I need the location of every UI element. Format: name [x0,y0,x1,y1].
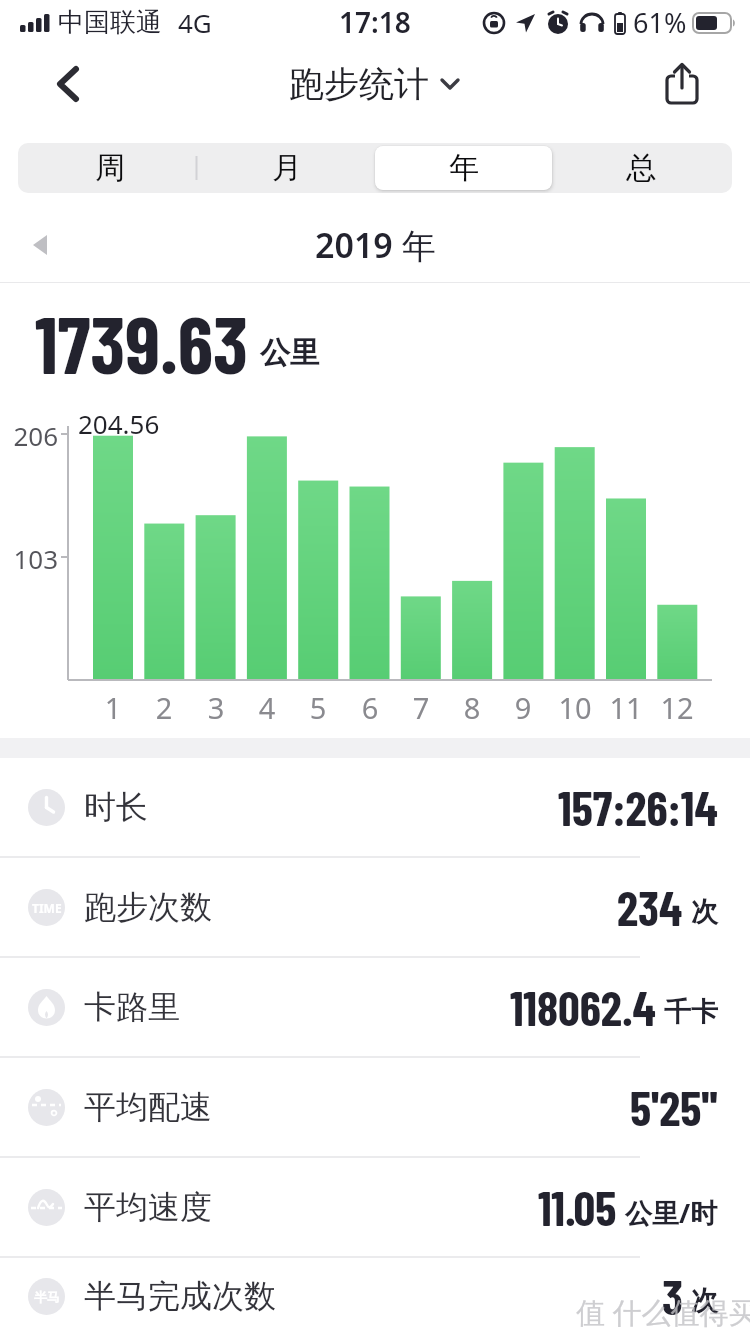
button[interactable] [658,60,706,108]
staticText: 234 [617,878,683,936]
staticText: 值 什么值得买 [576,1292,750,1332]
staticText: 卡路里 [84,987,180,1027]
staticText: 半马完成次数 [84,1276,276,1316]
staticText: 157:26:14 [558,778,718,836]
button[interactable]: 年 [375,146,552,190]
staticText: 次 [691,895,718,929]
staticText: 7 [396,688,446,727]
staticText: 时长 [84,787,148,827]
staticText: 206 [10,418,58,453]
staticText: 5'25'' [630,1078,718,1136]
staticText: 17:18 [339,3,411,41]
staticText: 千卡 [664,995,718,1029]
button[interactable]: 总 [552,146,729,190]
staticText: 2019 年 [315,222,436,268]
button[interactable]: 周 [21,146,198,190]
staticText: 103 [10,541,58,576]
staticText: 总 [626,149,656,187]
staticText: 年 [449,149,479,187]
button[interactable]: TIME [0,858,750,956]
staticText: 9 [498,688,548,727]
staticText: 61% [633,4,687,41]
staticText: TIME [32,900,62,916]
button[interactable] [44,60,92,108]
staticText: 月 [272,149,302,187]
button[interactable]: 卡路里 [0,958,750,1056]
staticText: 3 [191,688,241,727]
button[interactable]: 半马 [0,1258,750,1334]
staticText: 公里 [260,334,320,372]
staticText: 12 [652,688,702,727]
staticText: 跑步次数 [84,887,212,927]
staticText: 平均速度 [84,1187,212,1227]
staticText: 11.05 [538,1178,617,1236]
staticText: 公里/时 [625,1194,718,1231]
staticText: 次 [691,1284,718,1318]
button[interactable]: 时长 [0,758,750,856]
staticText: 中国联通 [58,6,162,39]
staticText: 1 [88,688,138,727]
button[interactable]: 平均配速 [0,1058,750,1156]
staticText: 118062.4 [510,978,656,1036]
staticText: 3 [662,1267,683,1325]
staticText: 周 [95,149,125,187]
staticText: 半马 [34,1289,60,1305]
staticText: 11 [601,688,651,727]
staticText: 平均配速 [84,1087,212,1127]
staticText: 跑步统计 [289,62,429,106]
button[interactable]: 平均速度 [0,1158,750,1256]
staticText: 4G [178,5,212,40]
staticText: 2 [139,688,189,727]
staticText: 204.56 [78,406,160,441]
staticText: 10 [550,688,600,727]
button[interactable]: 跑步统计 [289,62,461,106]
staticText: 1739.63 [35,294,248,390]
button[interactable]: 月 [198,146,375,190]
staticText: 5 [293,688,343,727]
staticText: 4 [242,688,292,727]
staticText: 6 [345,688,395,727]
staticText: 8 [447,688,497,727]
button[interactable] [22,227,58,263]
